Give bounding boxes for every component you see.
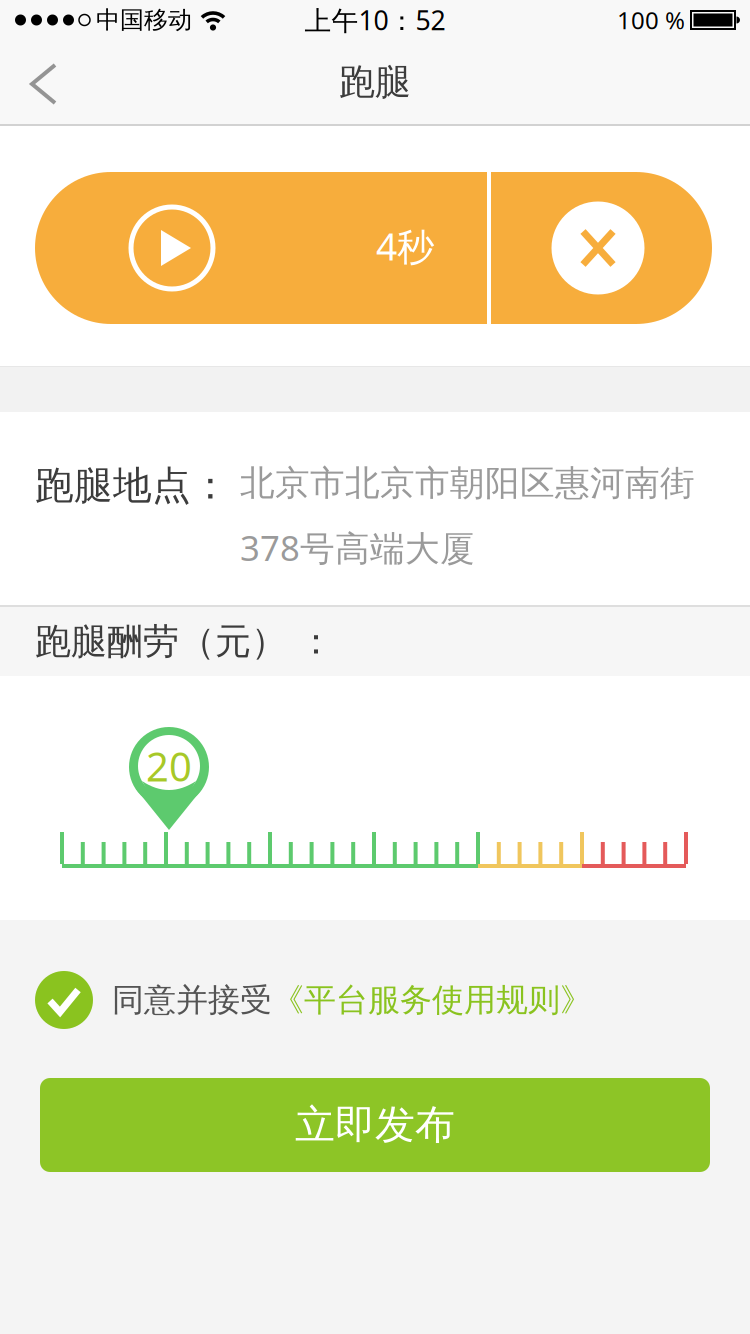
button[interactable]: Back	[0, 59, 58, 105]
staticText: 跑腿地点：	[35, 462, 230, 509]
staticText: 跑腿	[339, 60, 411, 104]
button[interactable]: 同意并接受平台服务使用规则	[0, 971, 750, 1029]
button[interactable]: 播放	[131, 207, 213, 289]
staticText: 100 %	[617, 4, 685, 36]
staticText: 《平台服务使用规则》	[272, 980, 592, 1020]
staticText: 上午10：52	[304, 2, 445, 38]
button[interactable]: 立即发布	[40, 1078, 710, 1172]
staticText: 中国移动	[96, 5, 192, 35]
button[interactable]: 删除语音	[551, 201, 644, 294]
staticText: 20	[146, 739, 192, 792]
staticText: 4秒	[376, 221, 434, 271]
staticText: 立即发布	[295, 1100, 455, 1149]
staticText: 北京市北京市朝阳区惠河南街 378号高端大厦	[240, 462, 695, 571]
staticText: 跑腿酬劳（元） ：	[35, 619, 334, 664]
staticText: 同意并接受	[112, 980, 272, 1020]
